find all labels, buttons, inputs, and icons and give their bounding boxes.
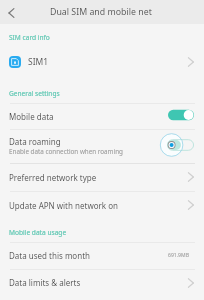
- button[interactable]: Data limits & alerts: [0, 269, 204, 296]
- button[interactable]: SIM1: [0, 45, 204, 78]
- button[interactable]: Mobile data: [0, 103, 204, 129]
- button[interactable]: Data roaming toggle: [167, 133, 194, 157]
- button[interactable]: Mobile data toggle: [168, 108, 194, 122]
- button[interactable]: Preferred network type: [0, 163, 204, 191]
- staticText: Update APN with network on: [9, 200, 118, 211]
- staticText: Data roaming: [9, 136, 61, 147]
- button[interactable]: Back: [0, 1, 22, 23]
- staticText: SIM1: [28, 56, 49, 68]
- staticText: Enable data connection when roaming: [9, 147, 123, 156]
- button[interactable]: Data roaming: [0, 129, 204, 163]
- staticText: Mobile data usage: [9, 228, 67, 237]
- button[interactable]: Update APN with network on: [0, 191, 204, 219]
- staticText: Mobile data: [9, 111, 54, 122]
- staticText: SIM card info: [9, 33, 50, 42]
- staticText: Data limits & alerts: [9, 277, 81, 288]
- staticText: Preferred network type: [9, 172, 97, 183]
- staticText: 691.9MB: [168, 252, 189, 259]
- button[interactable]: Data used this month: [0, 242, 204, 269]
- staticText: General settings: [9, 89, 60, 98]
- staticText: Data used this month: [9, 250, 90, 261]
- staticText: Dual SIM and mobile net: [50, 6, 152, 18]
